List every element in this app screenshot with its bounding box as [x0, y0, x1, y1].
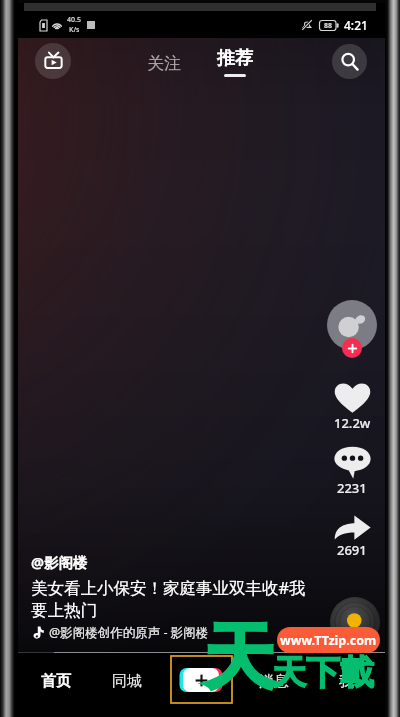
- button[interactable]: Like: [324, 382, 380, 432]
- staticText: 12.2w: [334, 414, 371, 432]
- staticText: 4:21: [344, 17, 368, 33]
- button[interactable]: Music: [330, 597, 380, 647]
- staticText: 88: [324, 21, 333, 31]
- staticText: 我: [339, 672, 354, 691]
- button[interactable]: Live: [35, 43, 71, 79]
- staticText: www.TTzip.com: [280, 632, 377, 649]
- button[interactable]: Comment: [324, 446, 380, 497]
- button[interactable]: Share: [324, 515, 380, 559]
- staticText: 关注: [147, 53, 181, 74]
- staticText: 2231: [337, 479, 367, 497]
- staticText: 同城: [112, 672, 142, 691]
- staticText: 推荐: [217, 47, 253, 70]
- button[interactable]: 消息: [246, 649, 302, 713]
- staticText: 天: [203, 613, 275, 704]
- button[interactable]: 关注: [130, 50, 198, 76]
- button[interactable]: 我: [318, 649, 374, 713]
- button[interactable]: Create: [183, 668, 219, 692]
- button[interactable]: 同城: [99, 649, 155, 713]
- staticText: @影阁楼创作的原声 - 影阁楼: [49, 624, 209, 641]
- staticText: 40.5: [67, 15, 81, 25]
- staticText: 美女看上小保安！家庭事业双丰收#我要上热门: [31, 576, 319, 621]
- staticText: 首页: [41, 672, 71, 691]
- button[interactable]: 推荐: [201, 47, 269, 83]
- button[interactable]: 首页: [28, 649, 84, 713]
- staticText: K/s: [69, 25, 80, 35]
- staticText: @影阁楼: [31, 552, 88, 572]
- staticText: 消息: [259, 672, 289, 691]
- button[interactable]: Search: [332, 44, 367, 79]
- button[interactable]: Profile: [327, 300, 377, 370]
- staticText: 天下載: [272, 651, 374, 694]
- staticText: 2691: [337, 541, 367, 559]
